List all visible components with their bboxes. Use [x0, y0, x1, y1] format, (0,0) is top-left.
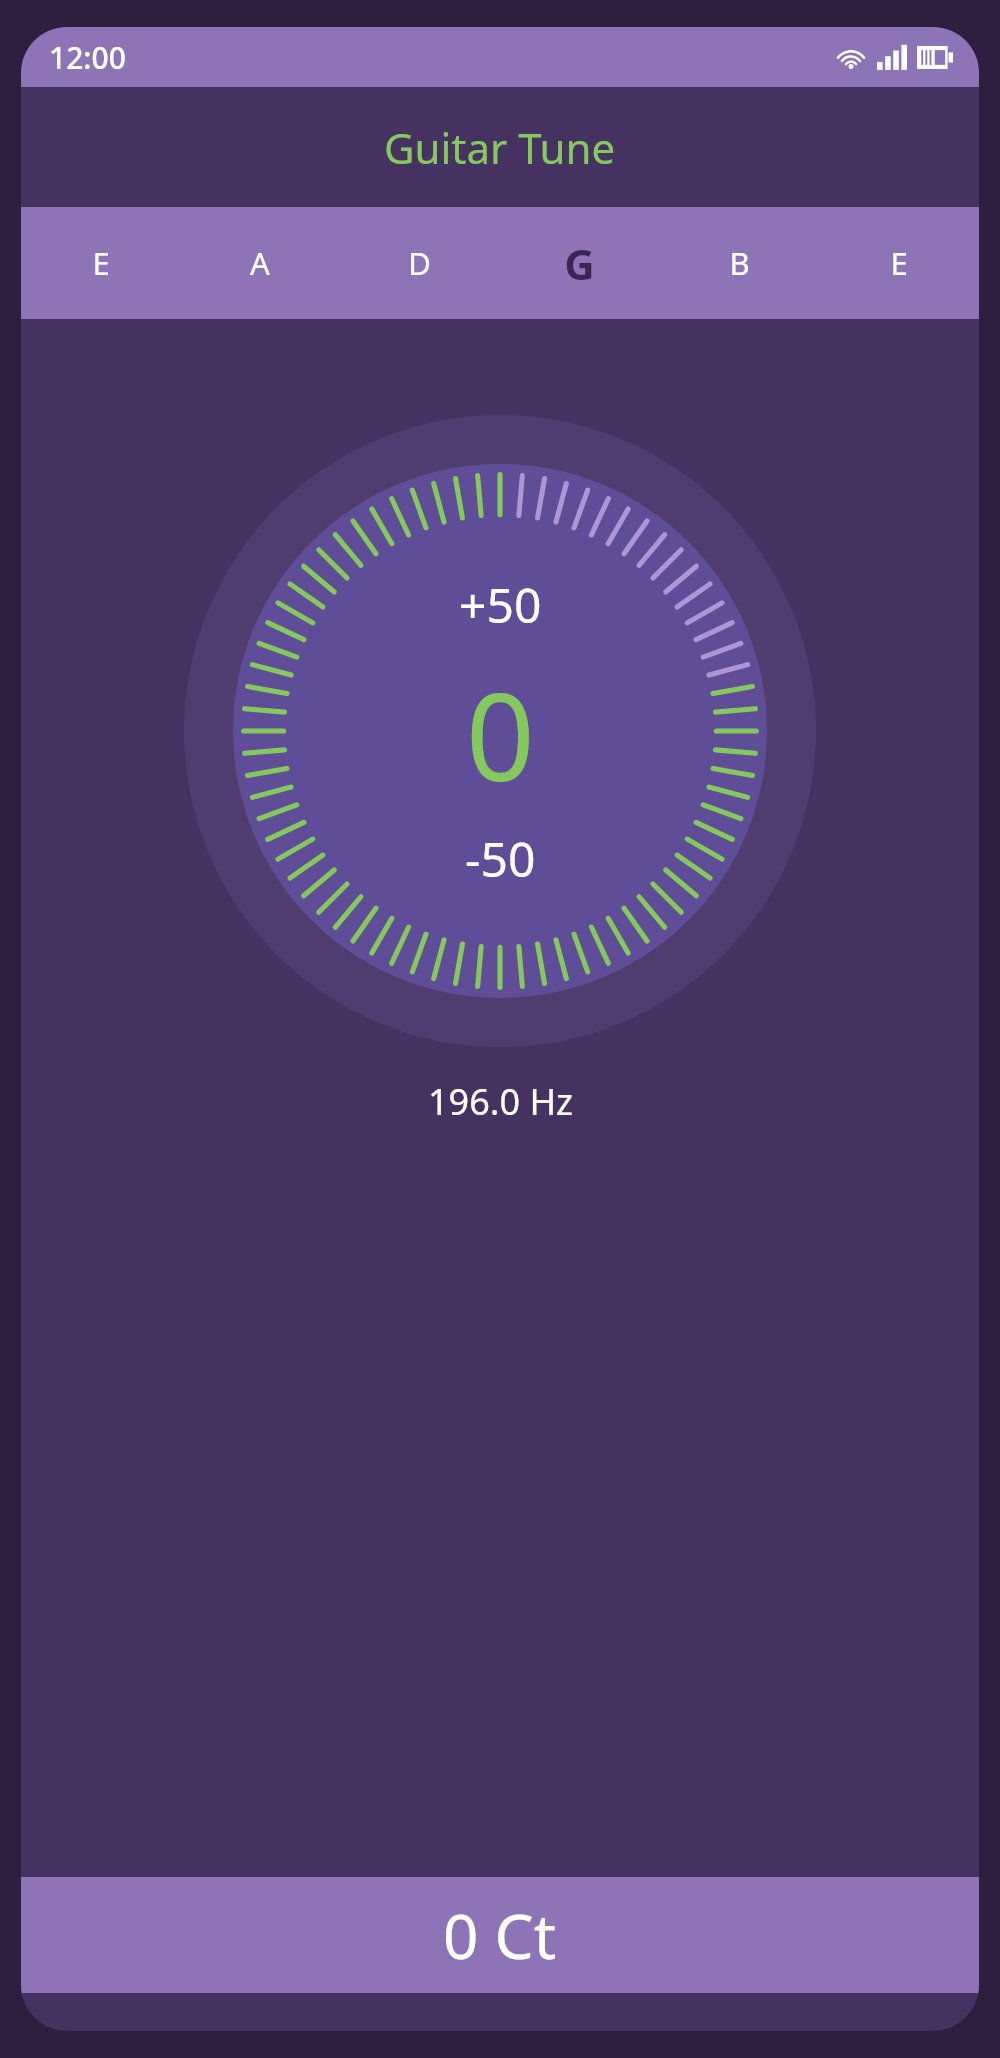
other: Signal — [877, 45, 907, 70]
staticText: G — [564, 235, 595, 292]
staticText: -50 — [465, 826, 536, 891]
staticText: 0 — [466, 653, 535, 816]
staticText: +50 — [459, 572, 542, 637]
staticText: B — [729, 242, 750, 284]
staticText: 12:00 — [49, 37, 126, 78]
button[interactable]: D — [339, 207, 499, 319]
button[interactable]: 0 Ct — [21, 1877, 979, 1993]
staticText: E — [92, 242, 110, 284]
staticText: Guitar Tune — [384, 119, 616, 176]
other: Wi-Fi — [835, 45, 867, 70]
button[interactable]: A — [180, 207, 339, 319]
button[interactable]: G — [499, 207, 659, 319]
other: Battery — [917, 46, 953, 69]
button[interactable]: E — [21, 207, 180, 319]
button[interactable]: B — [659, 207, 819, 319]
staticText: D — [408, 242, 431, 284]
button[interactable]: E — [819, 207, 979, 319]
staticText: A — [250, 242, 270, 284]
staticText: E — [890, 242, 908, 284]
staticText: 196.0 Hz — [428, 1077, 573, 1126]
staticText: 0 Ct — [443, 1893, 557, 1977]
